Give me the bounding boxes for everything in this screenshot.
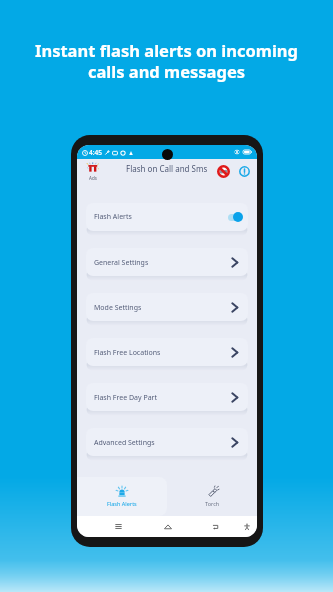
staticText: Ads [89,175,97,181]
staticText: Flash Alerts [107,500,137,507]
button[interactable]: Flash Alerts [77,477,167,516]
button[interactable]: Remove ads [217,165,230,178]
button[interactable]: Accessibility [240,520,253,533]
button[interactable]: Back [209,520,222,533]
staticText: Torch [205,500,220,507]
staticText: Flash on Call and Sms [126,163,208,174]
button[interactable]: Home [161,520,174,533]
button[interactable]: Menu [112,520,125,533]
button[interactable]: Torch [167,477,257,516]
staticText: Advanced Settings [94,438,155,448]
button[interactable]: Ads [86,161,100,181]
button[interactable]: Flash Alerts [86,203,248,231]
staticText: Flash Free Locations [94,348,161,358]
button[interactable]: Advanced Settings [86,428,248,456]
button[interactable]: Mode Settings [86,293,248,321]
staticText: General Settings [94,258,149,268]
staticText: Instant flash alerts on incoming calls a… [0,39,333,83]
staticText: 4:45 [89,148,102,157]
button[interactable]: Flash Free Locations [86,338,248,366]
staticText: Flash Free Day Part [94,393,157,403]
staticText: Flash Alerts [94,212,132,222]
staticText: Mode Settings [94,303,142,313]
button[interactable]: Info [239,166,250,177]
button[interactable]: Flash Free Day Part [86,383,248,411]
button[interactable]: General Settings [86,248,248,276]
